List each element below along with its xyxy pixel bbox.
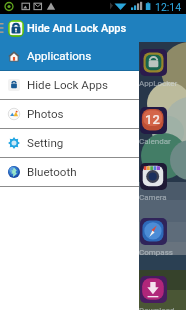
button[interactable]: Applications [0,42,139,70]
button[interactable]: Download [140,276,167,303]
staticText: Camera [139,193,167,202]
button[interactable]: Open navigation drawer [0,14,4,42]
button[interactable]: Setting [0,129,139,157]
button[interactable]: Compass [140,218,167,245]
staticText: Compass [139,248,173,257]
button[interactable]: Camera [140,163,167,190]
staticText: 12 [145,112,160,127]
staticText: Setting [27,136,64,150]
button[interactable]: Calendar [140,107,167,134]
staticText: Bluetooth [27,165,77,179]
staticText: 12:14 [155,1,182,13]
button[interactable]: Hide Lock Apps [0,71,139,99]
staticText: AppLocker [139,79,178,88]
staticText: Photos [27,107,64,121]
staticText: Calendar [139,137,171,146]
staticText: Hide And Lock Apps [27,22,127,35]
button[interactable]: AppLocker [140,49,167,76]
button[interactable]: Bluetooth [0,158,139,186]
staticText: Hide Lock Apps [27,78,108,92]
staticText: Applications [27,49,92,63]
staticText: Download [139,306,175,310]
button[interactable]: Photos [0,100,139,128]
